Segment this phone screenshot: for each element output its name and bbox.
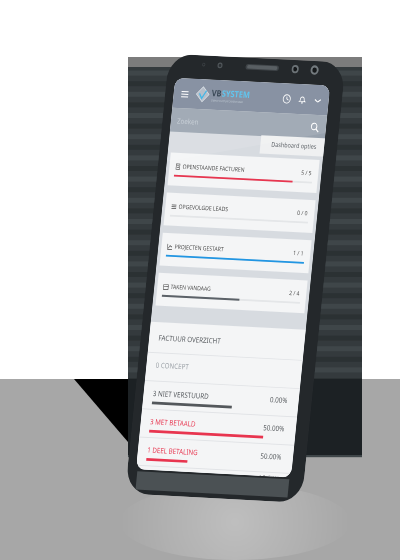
staticText: SYSTEM xyxy=(221,87,251,101)
staticText: FACTUUR OVERZICHT xyxy=(158,332,222,345)
staticText: Zoeken xyxy=(177,115,199,126)
staticText: 1 / 1 xyxy=(293,248,304,257)
button[interactable]: Menu xyxy=(178,87,190,100)
button[interactable]: Search xyxy=(307,119,321,134)
staticText: OPGEVOLGDE LEADS xyxy=(178,202,229,213)
button[interactable]: Notifications xyxy=(295,92,309,107)
button[interactable]: Help xyxy=(280,91,294,106)
button[interactable]: 3 NIET VERSTUURD xyxy=(142,381,300,416)
staticText: 2 / 4 xyxy=(289,289,300,297)
staticText: 5 / 5 xyxy=(301,168,312,177)
staticText: 0.00% xyxy=(269,394,288,405)
button[interactable]: TAKEN VANDAAG xyxy=(155,273,308,313)
staticText: OPENSTAANDE FACTUREN xyxy=(182,162,245,174)
staticText: 0 / 0 xyxy=(297,208,308,217)
button[interactable]: PROJECTEN GESTART xyxy=(159,233,312,273)
staticText: 1 DEEL BETALING xyxy=(147,444,199,457)
staticText: VB xyxy=(211,87,222,99)
staticText: 3 NIET VERSTUURD xyxy=(152,388,209,401)
staticText: TAKEN VANDAAG xyxy=(170,282,211,293)
staticText: 16.67% xyxy=(258,472,280,477)
button[interactable]: Account menu xyxy=(311,93,325,108)
staticText: 50.00% xyxy=(263,422,285,433)
button[interactable]: OPENSTAANDE FACTUREN xyxy=(167,152,320,193)
staticText: SIMPLE OUTPERFORMING WEB xyxy=(211,99,243,104)
staticText: PROJECTEN GESTART xyxy=(174,242,225,253)
button[interactable]: OPGEVOLGDE LEADS xyxy=(163,193,316,233)
staticText: 50.00% xyxy=(260,450,283,461)
button[interactable]: 1 DEEL BETALING xyxy=(136,437,294,473)
button[interactable]: 0 CONCEPT xyxy=(145,353,303,388)
staticText: Dashboard opties xyxy=(271,140,317,152)
staticText: 3 MET BETAALD xyxy=(150,416,196,428)
staticText: 0 CONCEPT xyxy=(155,359,190,371)
button[interactable]: 3 MET BETAALD xyxy=(139,409,297,445)
